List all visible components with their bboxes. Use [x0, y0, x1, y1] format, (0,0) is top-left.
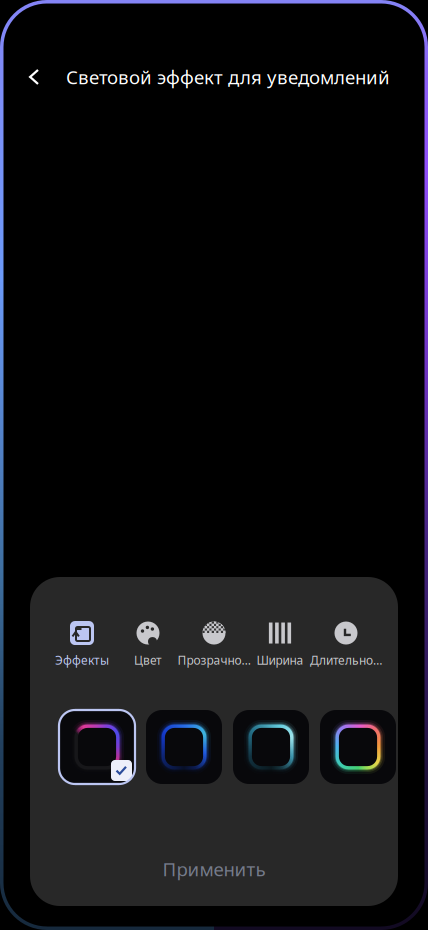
staticText: Ширина: [256, 652, 303, 668]
staticText: Прозрачно…: [177, 652, 250, 668]
staticText: Световой эффект для уведомлений: [66, 65, 390, 89]
button[interactable]: Применить: [30, 841, 398, 897]
button[interactable]: Назад: [12, 55, 56, 99]
button[interactable]: [320, 710, 396, 784]
button[interactable]: Эффекты: [49, 616, 115, 672]
button[interactable]: [59, 710, 135, 784]
staticText: Цвет: [134, 652, 162, 668]
staticText: Длительно…: [310, 652, 382, 668]
button[interactable]: [146, 710, 222, 784]
button[interactable]: Прозрачно…: [181, 616, 247, 672]
staticText: Эффекты: [55, 652, 109, 668]
button[interactable]: Цвет: [115, 616, 181, 672]
staticText: Применить: [162, 857, 265, 881]
button[interactable]: [233, 710, 309, 784]
button[interactable]: Длительно…: [313, 616, 379, 672]
button[interactable]: Ширина: [247, 616, 313, 672]
